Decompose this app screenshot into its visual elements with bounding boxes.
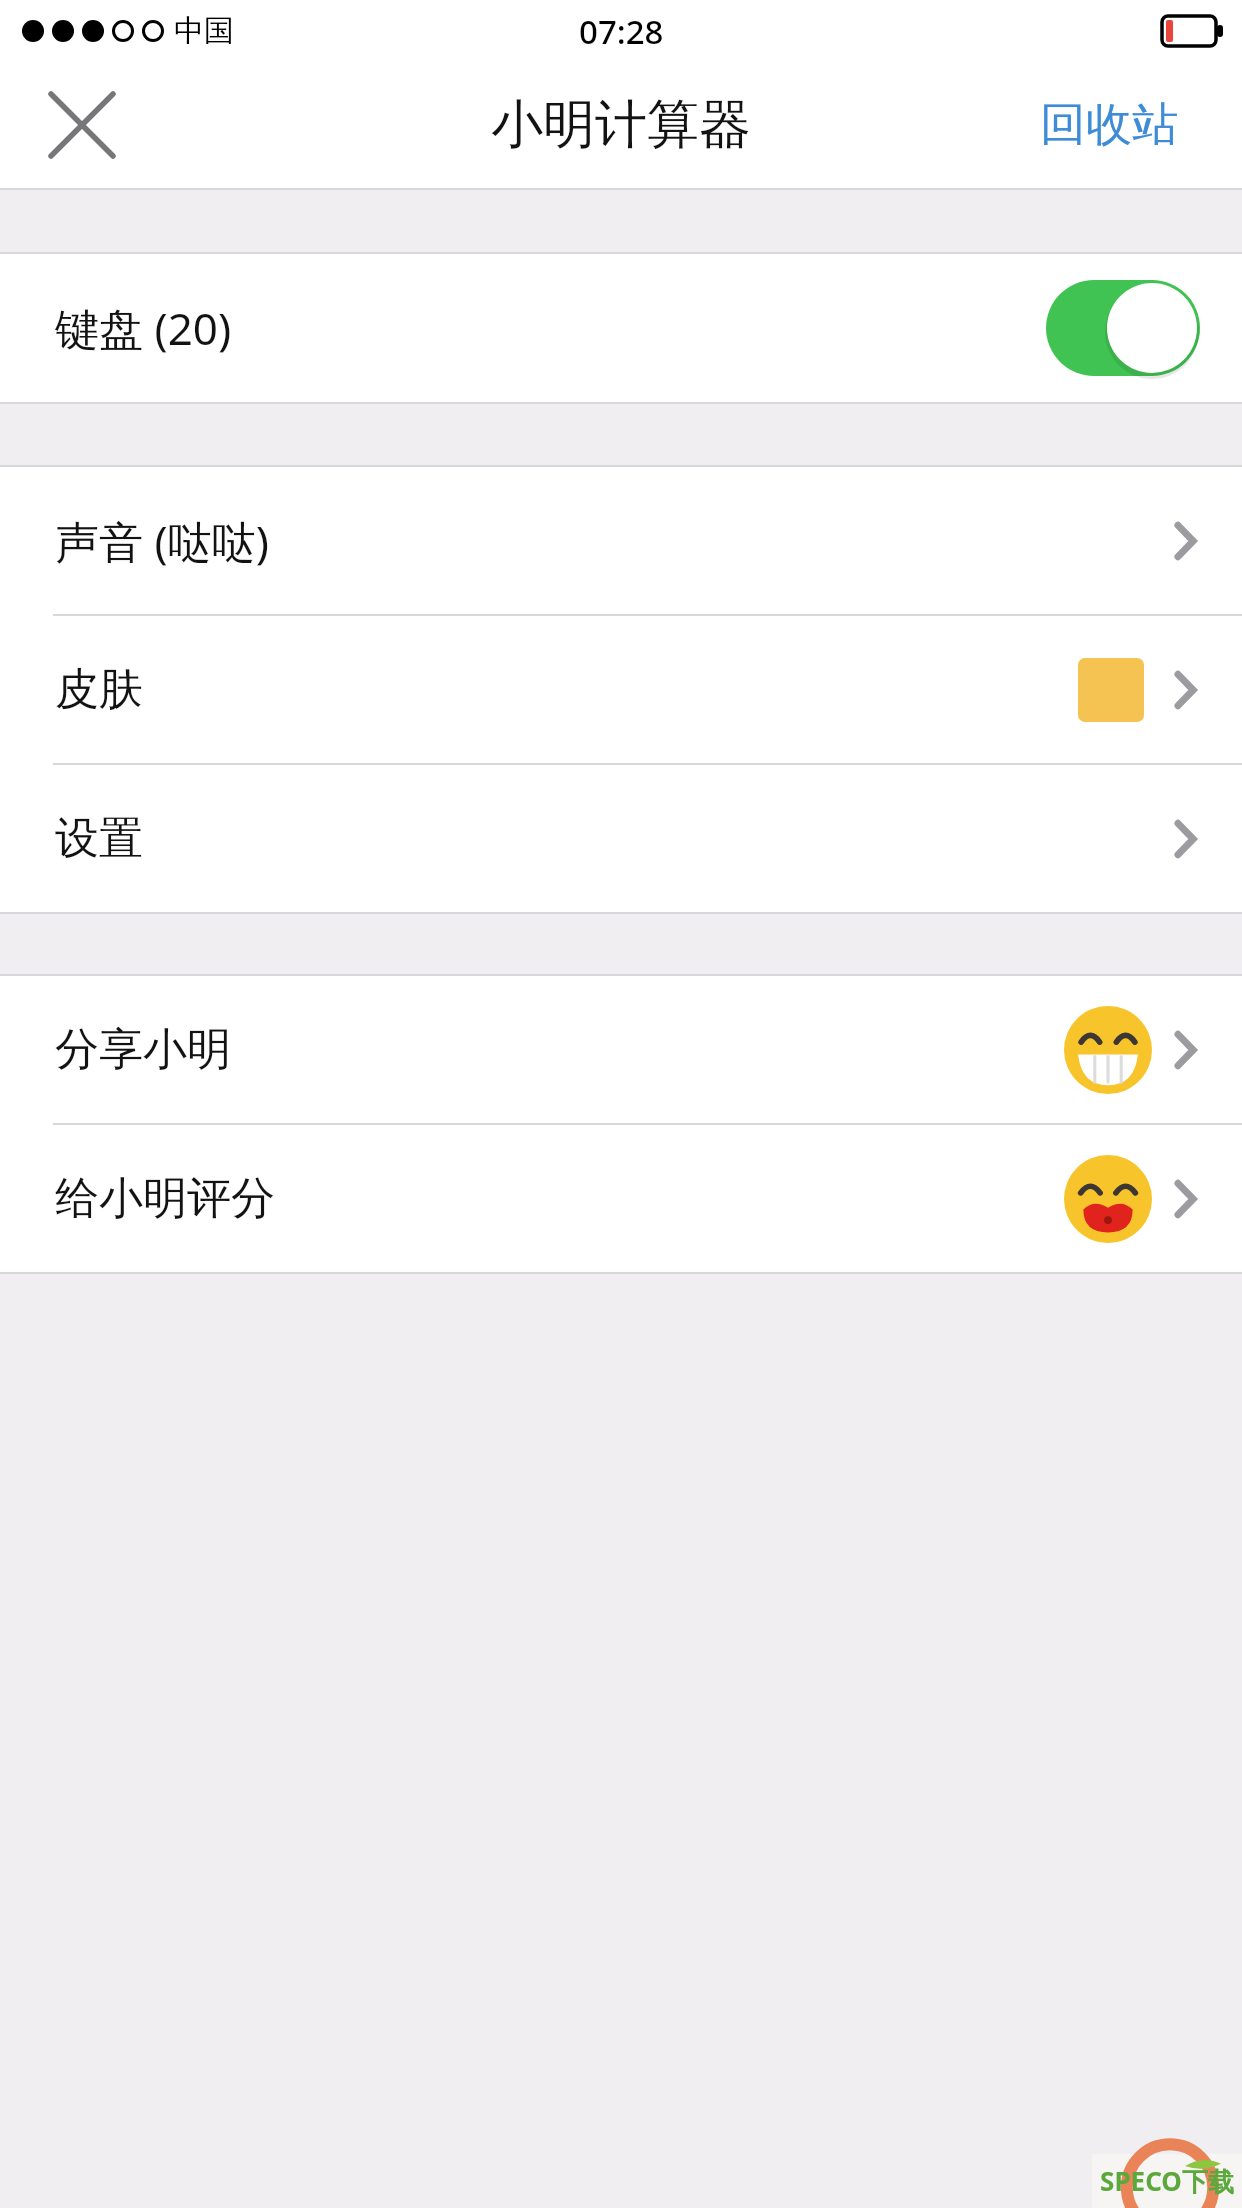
staticText: 中国 xyxy=(174,12,234,50)
button[interactable]: 给小明评分 xyxy=(0,1125,1242,1272)
staticText: 给小明评分 xyxy=(55,1171,275,1226)
staticText: 声音 (哒哒) xyxy=(55,511,269,571)
staticText: SPECO下载 xyxy=(1100,2163,1234,2199)
staticText: 皮肤 xyxy=(55,662,143,717)
staticText: 设置 xyxy=(55,811,143,866)
button[interactable]: 皮肤 xyxy=(0,616,1242,763)
button[interactable]: 设置 xyxy=(0,765,1242,912)
button[interactable]: Keyboard toggle xyxy=(1046,280,1200,376)
staticText: 键盘 (20) xyxy=(55,298,232,358)
button[interactable]: Close xyxy=(30,73,134,177)
staticText: 回收站 xyxy=(1040,96,1178,154)
button[interactable]: 键盘 (20) xyxy=(0,254,1242,402)
button[interactable]: 回收站 xyxy=(1040,96,1178,154)
staticText: 07:28 xyxy=(579,9,664,54)
staticText: 分享小明 xyxy=(55,1022,231,1077)
staticText: 小明计算器 xyxy=(491,92,751,158)
button[interactable]: 声音 (哒哒) xyxy=(0,467,1242,614)
button[interactable]: 分享小明 xyxy=(0,976,1242,1123)
